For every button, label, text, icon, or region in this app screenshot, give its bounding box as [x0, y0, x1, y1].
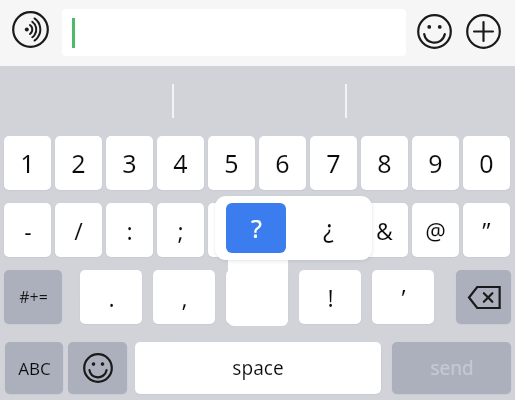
- staticText: 6: [275, 146, 290, 180]
- staticText: &: [376, 215, 393, 246]
- staticText: $: [327, 215, 341, 246]
- staticText: send: [430, 355, 474, 381]
- staticText: space: [232, 355, 284, 381]
- staticText: :: [126, 215, 133, 246]
- button[interactable]: ABC: [5, 342, 63, 394]
- staticText: ”: [482, 215, 491, 246]
- button[interactable]: 5: [208, 136, 255, 190]
- button[interactable]: #+=: [4, 270, 62, 324]
- staticText: !: [327, 282, 334, 313]
- staticText: 3: [122, 146, 137, 180]
- staticText: .: [108, 282, 115, 313]
- staticText: #+=: [19, 286, 48, 308]
- button[interactable]: /: [55, 203, 102, 257]
- staticText: -: [24, 215, 32, 246]
- staticText: 2: [71, 146, 86, 180]
- button[interactable]: ,: [153, 270, 215, 324]
- button[interactable]: 6: [259, 136, 306, 190]
- button[interactable]: ¿: [298, 203, 358, 253]
- staticText: ’: [401, 282, 406, 313]
- button[interactable]: -: [4, 203, 51, 257]
- button[interactable]: Backspace: [456, 270, 511, 324]
- button[interactable]: 9: [412, 136, 459, 190]
- staticText: 5: [224, 146, 239, 180]
- button[interactable]: 1: [4, 136, 51, 190]
- button[interactable]: 7: [310, 136, 357, 190]
- staticText: ABC: [18, 357, 51, 380]
- button[interactable]: Add attachment: [466, 14, 501, 49]
- button[interactable]: !: [299, 270, 361, 324]
- button[interactable]: $: [310, 203, 357, 257]
- button[interactable]: ”: [463, 203, 510, 257]
- button[interactable]: ;: [157, 203, 204, 257]
- button[interactable]: Emoji keyboard: [68, 342, 127, 394]
- staticText: ¿: [323, 211, 334, 245]
- button[interactable]: ?: [226, 203, 286, 253]
- staticText: 7: [326, 146, 341, 180]
- button[interactable]: .: [80, 270, 142, 324]
- button[interactable]: 8: [361, 136, 408, 190]
- button[interactable]: @: [412, 203, 459, 257]
- button[interactable]: [62, 9, 406, 56]
- button[interactable]: 4: [157, 136, 204, 190]
- staticText: 0: [479, 146, 494, 180]
- button[interactable]: 0: [463, 136, 510, 190]
- button[interactable]: Emoji: [417, 14, 452, 49]
- button[interactable]: 3: [106, 136, 153, 190]
- button[interactable]: ): [259, 203, 306, 257]
- button[interactable]: :: [106, 203, 153, 257]
- staticText: @: [425, 215, 446, 246]
- staticText: 4: [173, 146, 188, 180]
- button[interactable]: Voice message: [12, 11, 49, 48]
- staticText: 1: [20, 146, 35, 180]
- button[interactable]: 2: [55, 136, 102, 190]
- staticText: ?: [251, 211, 262, 245]
- staticText: 8: [377, 146, 392, 180]
- staticText: ,: [181, 282, 188, 313]
- staticText: ;: [177, 215, 184, 246]
- button[interactable]: send: [392, 342, 511, 394]
- staticText: /: [74, 215, 83, 246]
- button[interactable]: &: [361, 203, 408, 257]
- button[interactable]: space: [135, 342, 381, 394]
- button[interactable]: ’: [372, 270, 434, 324]
- button[interactable]: (: [208, 203, 255, 257]
- staticText: 9: [428, 146, 443, 180]
